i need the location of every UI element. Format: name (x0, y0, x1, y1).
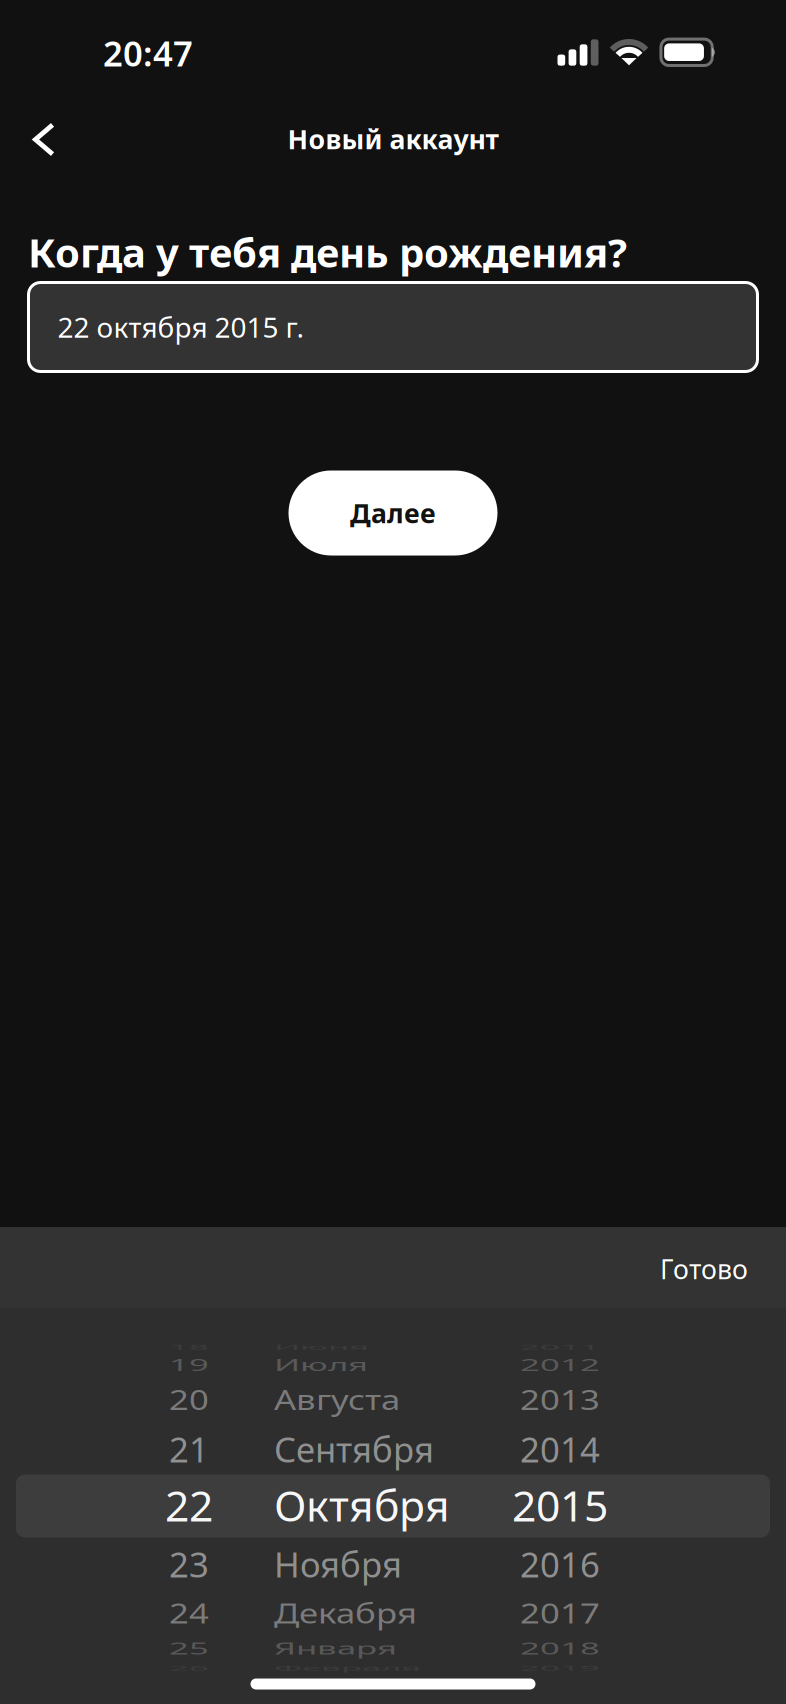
staticText: Июля (274, 1341, 368, 1387)
staticText: 2016 (520, 1541, 600, 1587)
staticText: Октября (274, 1477, 450, 1533)
staticText: Готово (660, 1251, 748, 1287)
staticText: Ноября (274, 1541, 402, 1587)
staticText: 24 (169, 1590, 209, 1636)
staticText: 21 (169, 1426, 209, 1472)
staticText: Августа (274, 1376, 400, 1422)
staticText: 2014 (520, 1426, 600, 1472)
staticText: Сентября (274, 1426, 434, 1472)
staticText: 2015 (512, 1477, 608, 1533)
staticText: Новый аккаунт (287, 121, 498, 157)
staticText: Февраля (274, 1645, 421, 1691)
staticText: 2018 (520, 1625, 600, 1671)
staticText: Декабря (274, 1590, 417, 1636)
staticText: 20:47 (103, 30, 193, 76)
button[interactable]: 22 октября 2015 г. (28, 282, 757, 371)
staticText: Июня (274, 1324, 369, 1370)
button[interactable]: Дата рождения: 22 октября 2015 г. (0, 1308, 786, 1704)
staticText: 22 октября 2015 г. (57, 308, 304, 346)
staticText: 25 (169, 1625, 209, 1671)
staticText: Когда у тебя день рождения? (28, 225, 627, 278)
staticText: Далее (350, 495, 436, 531)
staticText: 22 (165, 1477, 213, 1533)
staticText: 2013 (520, 1376, 600, 1422)
staticText: 2017 (520, 1590, 600, 1636)
button[interactable]: Назад (4, 99, 84, 179)
button[interactable]: Далее (288, 470, 497, 555)
staticText: 2011 (520, 1324, 600, 1370)
staticText: 20 (169, 1376, 209, 1422)
staticText: 2012 (520, 1341, 600, 1387)
staticText: 26 (169, 1645, 209, 1691)
staticText: 18 (169, 1324, 209, 1370)
staticText: 23 (169, 1541, 209, 1587)
staticText: 19 (169, 1341, 209, 1387)
staticText: Января (274, 1625, 397, 1671)
button[interactable]: Готово (634, 1228, 774, 1309)
staticText: 2019 (520, 1645, 600, 1691)
